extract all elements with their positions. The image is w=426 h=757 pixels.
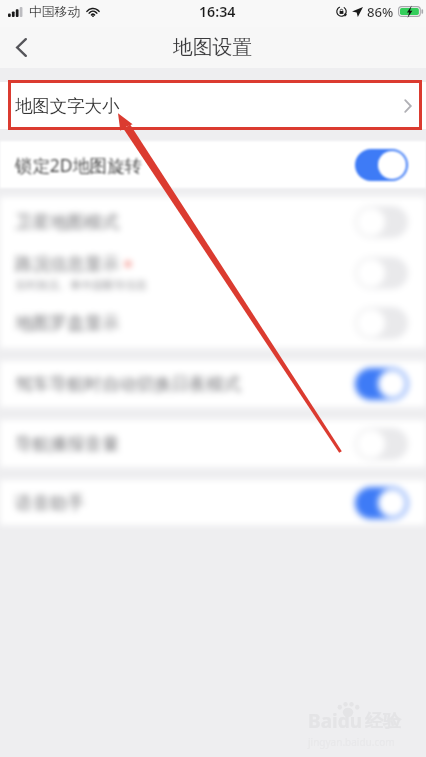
button[interactable]: 驾车导航时自动切换日夜模式 <box>0 361 426 407</box>
button[interactable]: 导航播报音量 <box>0 420 426 467</box>
staticText: 中国移动 <box>29 4 81 20</box>
staticText: 驾车导航时自动切换日夜模式 <box>15 373 242 395</box>
button[interactable]: Back <box>2 28 40 66</box>
staticText: 语音助手 <box>15 492 85 514</box>
staticText: 导航播报音量 <box>15 433 120 455</box>
button[interactable]: Switch on <box>355 487 408 519</box>
button[interactable]: Switch off <box>355 206 408 238</box>
staticText: 经验 <box>365 710 401 733</box>
staticText: 地图罗盘显示 <box>15 312 120 334</box>
staticText: 实时路况、事件提醒等信息 <box>15 278 147 292</box>
button[interactable]: Switch off <box>355 428 408 460</box>
button[interactable]: 地图文字大小 <box>0 82 426 129</box>
staticText: 卫星地图模式 <box>15 211 120 233</box>
button[interactable]: 地图罗盘显示 <box>0 298 426 348</box>
staticText: 路况信息显示 <box>15 253 120 275</box>
staticText: 锁定2D地图旋转 <box>15 153 142 177</box>
staticText: 16:34 <box>199 2 236 21</box>
button[interactable]: 语音助手 <box>0 480 426 525</box>
button[interactable]: 锁定2D地图旋转 <box>0 141 426 188</box>
button[interactable]: 卫星地图模式 <box>0 197 426 247</box>
button[interactable]: Switch off <box>355 307 408 339</box>
staticText: 86% <box>367 3 394 21</box>
button[interactable]: Switch on <box>355 368 408 400</box>
staticText: 地图文字大小 <box>15 95 120 117</box>
staticText: Baidu <box>308 708 363 734</box>
staticText: 地图设置 <box>173 35 253 60</box>
button[interactable]: 路况信息显示 <box>0 247 426 298</box>
button[interactable]: Switch on <box>355 149 408 181</box>
button[interactable]: Switch off <box>355 257 408 289</box>
